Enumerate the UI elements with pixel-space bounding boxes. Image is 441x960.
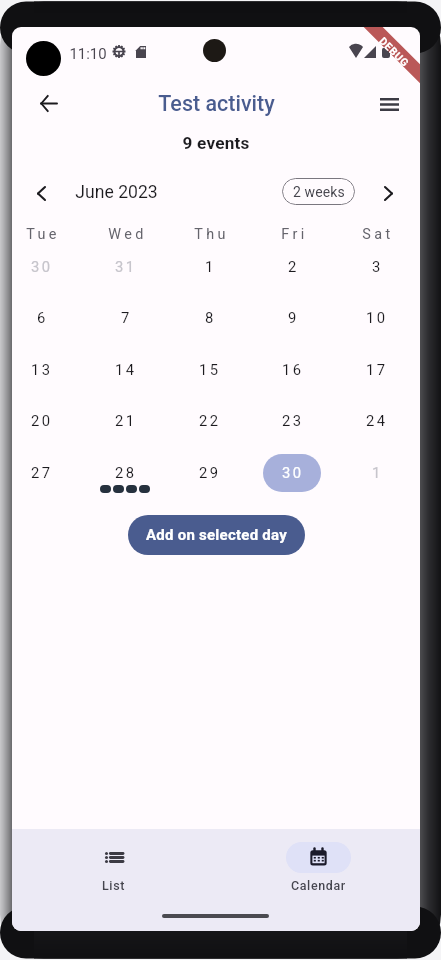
button[interactable]: 31 xyxy=(83,241,167,292)
staticText: 31 xyxy=(115,258,137,275)
staticText: 22 xyxy=(199,412,221,429)
staticText: List xyxy=(102,878,125,893)
staticText: DEBUG xyxy=(377,35,412,69)
staticText: 16 xyxy=(282,361,304,378)
button[interactable]: 1 xyxy=(334,447,418,498)
button[interactable]: 15 xyxy=(167,344,251,395)
button[interactable]: 2 weeks xyxy=(282,178,355,205)
staticText: 30 xyxy=(31,258,53,275)
staticText: 27 xyxy=(31,464,53,481)
button[interactable]: Add on selected day xyxy=(128,515,305,555)
button[interactable]: Calendar xyxy=(257,842,379,900)
button[interactable]: 6 xyxy=(12,292,83,343)
button[interactable]: 1 xyxy=(167,241,251,292)
staticText: Tue xyxy=(26,226,60,243)
button[interactable]: 21 xyxy=(83,395,167,446)
button[interactable]: 13 xyxy=(12,344,83,395)
button[interactable]: 30 xyxy=(250,447,334,498)
button[interactable]: 23 xyxy=(250,395,334,446)
button[interactable]: 10 xyxy=(334,292,418,343)
button[interactable]: 16 xyxy=(250,344,334,395)
staticText: 29 xyxy=(199,464,221,481)
staticText: 3 xyxy=(372,258,383,275)
staticText: 2 xyxy=(288,258,299,275)
staticText: Add on selected day xyxy=(146,526,288,544)
button[interactable]: Previous month xyxy=(21,173,61,213)
button[interactable]: Next month xyxy=(368,173,408,213)
staticText: 24 xyxy=(366,412,388,429)
button[interactable]: 8 xyxy=(167,292,251,343)
staticText: Calendar xyxy=(291,878,346,893)
staticText: 9 xyxy=(288,309,299,326)
staticText: 28 xyxy=(115,464,137,481)
staticText: 8 xyxy=(205,309,216,326)
staticText: 6 xyxy=(37,309,48,326)
staticText: Test activity xyxy=(158,91,275,116)
staticText: 1 xyxy=(205,258,216,275)
staticText: Thu xyxy=(194,226,229,243)
staticText: 15 xyxy=(199,361,221,378)
button[interactable]: 28 xyxy=(83,447,167,498)
staticText: 23 xyxy=(282,412,304,429)
button[interactable]: 24 xyxy=(334,395,418,446)
button[interactable]: 2 xyxy=(250,241,334,292)
button[interactable]: List xyxy=(52,842,174,900)
staticText: 9 events xyxy=(182,133,250,153)
button[interactable]: 9 xyxy=(250,292,334,343)
button[interactable]: 7 xyxy=(83,292,167,343)
staticText: Wed xyxy=(108,226,147,243)
button[interactable]: 22 xyxy=(167,395,251,446)
staticText: 14 xyxy=(115,361,137,378)
button[interactable]: 30 xyxy=(12,241,83,292)
staticText: 2 weeks xyxy=(293,184,345,200)
staticText: 17 xyxy=(366,361,388,378)
button[interactable]: 14 xyxy=(83,344,167,395)
button[interactable]: Back xyxy=(28,83,68,123)
button[interactable]: 3 xyxy=(334,241,418,292)
button[interactable]: 17 xyxy=(334,344,418,395)
staticText: 11:10 xyxy=(69,45,107,62)
staticText: 7 xyxy=(121,309,132,326)
staticText: 13 xyxy=(31,361,53,378)
staticText: Sat xyxy=(362,226,394,243)
staticText: June 2023 xyxy=(75,182,158,203)
staticText: 20 xyxy=(31,412,53,429)
staticText: 30 xyxy=(282,464,304,481)
staticText: 10 xyxy=(366,309,388,326)
button[interactable]: 20 xyxy=(12,395,83,446)
button[interactable]: Menu xyxy=(369,84,409,124)
button[interactable]: 27 xyxy=(12,447,83,498)
staticText: 21 xyxy=(115,412,137,429)
button[interactable]: 29 xyxy=(167,447,251,498)
staticText: Fri xyxy=(281,226,308,243)
staticText: 1 xyxy=(372,464,383,481)
